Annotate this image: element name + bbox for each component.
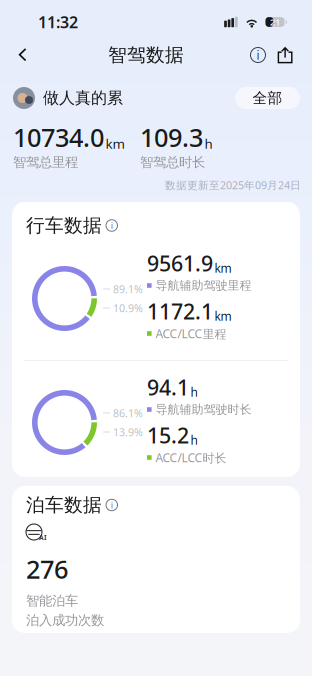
staticText: 泊入成功次数 xyxy=(26,612,104,628)
staticText: 做人真的累 xyxy=(43,88,123,108)
staticText: 行车数据 xyxy=(26,214,102,237)
staticText: 13.9% xyxy=(113,425,143,439)
staticText: h xyxy=(190,384,197,400)
staticText: i xyxy=(111,219,113,232)
button[interactable]: Back xyxy=(18,38,48,72)
staticText: 智驾数据 xyxy=(108,43,184,66)
staticText: 智能泊车 xyxy=(26,593,78,609)
staticText: h xyxy=(204,135,212,152)
staticText: 276 xyxy=(26,552,68,586)
staticText: 10734.0 xyxy=(13,120,104,154)
staticText: 全部 xyxy=(252,89,282,107)
staticText: 智驾总时长 xyxy=(140,154,205,170)
staticText: 导航辅助驾驶时长 xyxy=(156,402,252,417)
staticText: 1172.1 xyxy=(147,297,213,325)
staticText: AI xyxy=(39,533,47,542)
staticText: km xyxy=(214,308,231,324)
button[interactable]: Info xyxy=(244,38,272,72)
staticText: km xyxy=(214,260,231,276)
staticText: 数据更新至2025年09月24日 xyxy=(165,178,301,192)
staticText: 21 xyxy=(270,16,280,28)
button[interactable]: 全部 xyxy=(235,87,300,109)
staticText: i xyxy=(256,47,259,63)
staticText: km xyxy=(105,135,124,152)
staticText: h xyxy=(190,432,197,448)
staticText: 89.1% xyxy=(113,282,143,296)
staticText: 10.9% xyxy=(113,301,143,315)
staticText: 11:32 xyxy=(38,11,78,33)
staticText: 86.1% xyxy=(113,406,143,420)
staticText: 15.2 xyxy=(147,421,189,449)
staticText: 导航辅助驾驶里程 xyxy=(156,278,252,293)
button[interactable]: Share xyxy=(272,38,298,72)
staticText: 109.3 xyxy=(140,120,203,154)
staticText: 9561.9 xyxy=(147,249,213,277)
staticText: ACC/LCC时长 xyxy=(156,449,227,465)
staticText: ACC/LCC里程 xyxy=(156,325,227,341)
staticText: 94.1 xyxy=(147,373,189,401)
staticText: 智驾总里程 xyxy=(13,154,78,170)
staticText: i xyxy=(111,499,113,511)
staticText: 泊车数据 xyxy=(26,493,102,516)
